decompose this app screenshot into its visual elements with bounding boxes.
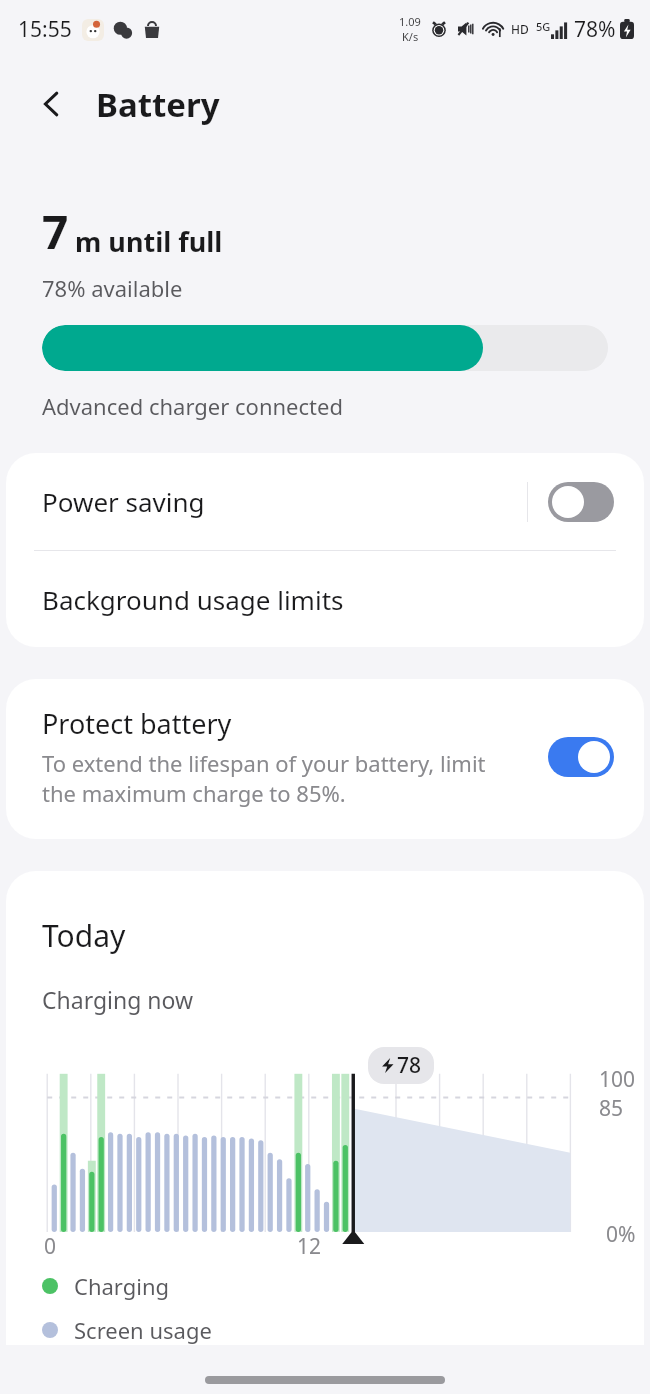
staticText: 0% bbox=[606, 1220, 636, 1249]
staticText: 15:55 bbox=[18, 15, 72, 44]
staticText: Charging now bbox=[42, 984, 194, 1015]
staticText: 1.09 bbox=[399, 14, 421, 29]
staticText: 0 bbox=[44, 1232, 57, 1261]
button[interactable]: Power saving bbox=[6, 453, 644, 550]
staticText: 78% available bbox=[42, 273, 183, 303]
staticText: 78 bbox=[397, 1051, 422, 1080]
staticText: 7 bbox=[42, 200, 69, 263]
staticText: Charging bbox=[74, 1271, 170, 1301]
staticText: 85 bbox=[599, 1094, 624, 1123]
button[interactable]: Off bbox=[548, 482, 614, 522]
staticText: m until full bbox=[75, 223, 223, 260]
button[interactable]: Protect battery bbox=[6, 679, 644, 839]
staticText: Power saving bbox=[42, 484, 527, 519]
staticText: Battery bbox=[96, 82, 220, 127]
staticText: K/s bbox=[402, 29, 419, 44]
staticText: 12 bbox=[297, 1232, 322, 1261]
staticText: Background usage limits bbox=[42, 582, 344, 617]
staticText: 100 bbox=[599, 1065, 636, 1094]
staticText: 78% bbox=[574, 15, 616, 44]
button[interactable]: Back bbox=[26, 78, 78, 130]
staticText: Advanced charger connected bbox=[42, 391, 343, 421]
button[interactable]: Background usage limits bbox=[6, 551, 644, 647]
button[interactable]: On bbox=[548, 737, 614, 777]
staticText: Today bbox=[42, 915, 126, 956]
staticText: Protect battery bbox=[42, 705, 232, 742]
staticText: To extend the lifespan of your battery, … bbox=[42, 748, 522, 809]
staticText: 5G bbox=[536, 19, 551, 34]
staticText: Screen usage bbox=[74, 1315, 212, 1345]
staticText: HD bbox=[511, 21, 529, 37]
